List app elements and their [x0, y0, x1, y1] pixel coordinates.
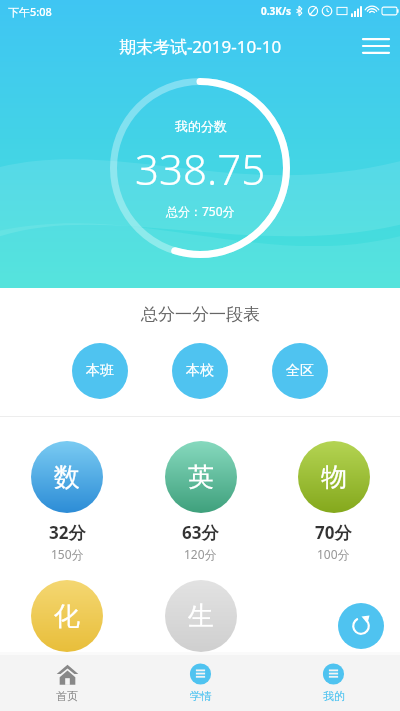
- button[interactable]: 学情: [134, 655, 267, 711]
- button[interactable]: 全区: [272, 343, 328, 399]
- staticText: 63分: [182, 521, 219, 544]
- staticText: 70分: [315, 521, 352, 544]
- staticText: 120分: [184, 546, 217, 562]
- button[interactable]: 化: [0, 580, 134, 652]
- button[interactable]: 本校: [172, 343, 228, 399]
- staticText: 物: [321, 461, 347, 494]
- staticText: 首页: [56, 689, 78, 703]
- staticText: 0.3K/s: [261, 4, 292, 18]
- staticText: 我的: [323, 689, 345, 703]
- staticText: 总分一分一段表: [141, 304, 260, 325]
- staticText: 32分: [49, 521, 86, 544]
- staticText: 下午5:08: [8, 4, 52, 19]
- staticText: 总分：750分: [166, 203, 235, 219]
- staticText: 150分: [51, 546, 84, 562]
- staticText: 期末考试-2019-10-10: [48, 35, 352, 58]
- button[interactable]: 本班: [72, 343, 128, 399]
- button[interactable]: Refresh: [338, 603, 384, 649]
- button[interactable]: 生: [134, 580, 267, 652]
- button[interactable]: Menu: [352, 22, 400, 70]
- button[interactable]: 物: [267, 441, 400, 562]
- button[interactable]: 英: [134, 441, 267, 562]
- staticText: 英: [188, 461, 214, 494]
- staticText: 化: [54, 600, 80, 633]
- button[interactable]: 首页: [0, 655, 134, 711]
- staticText: 数: [54, 461, 80, 494]
- staticText: 本校: [186, 362, 214, 380]
- button[interactable]: 我的: [267, 655, 400, 711]
- staticText: 100分: [317, 546, 350, 562]
- staticText: 学情: [190, 689, 212, 703]
- staticText: 我的分数: [175, 118, 227, 134]
- staticText: 全区: [286, 362, 314, 380]
- staticText: 生: [188, 600, 214, 633]
- button[interactable]: 数: [0, 441, 134, 562]
- staticText: 338.75: [135, 140, 266, 197]
- staticText: 本班: [86, 362, 114, 380]
